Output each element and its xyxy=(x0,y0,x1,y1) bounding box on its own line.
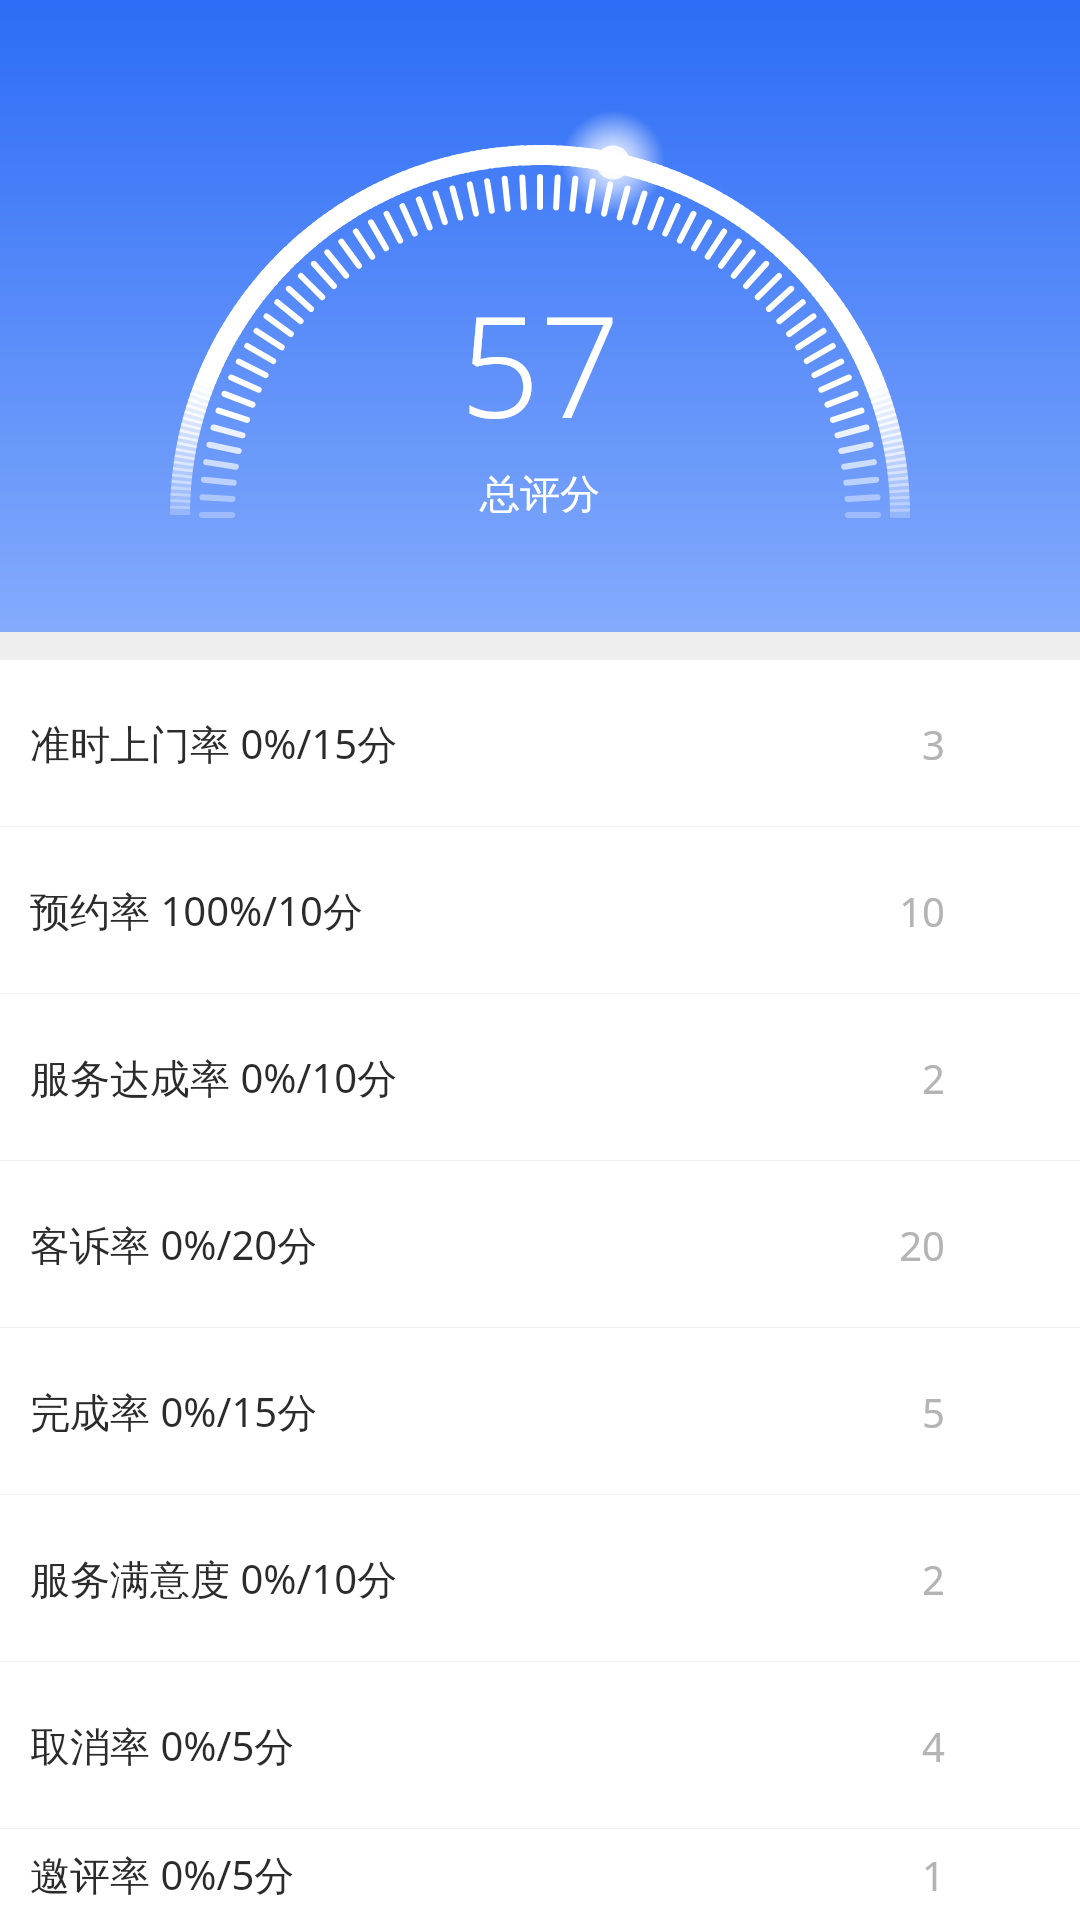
staticText: 5 xyxy=(922,1385,945,1439)
button[interactable]: 完成率 0%/15分 xyxy=(0,1328,1080,1494)
button[interactable]: 客诉率 0%/20分 xyxy=(0,1161,1080,1327)
staticText: 4 xyxy=(922,1719,945,1773)
staticText: 2 xyxy=(922,1051,945,1105)
staticText: 2 xyxy=(922,1552,945,1606)
staticText: 20 xyxy=(899,1218,945,1272)
button[interactable]: 邀评率 0%/5分 xyxy=(0,1829,1080,1920)
staticText: 总评分 xyxy=(480,469,600,519)
staticText: 服务满意度 0%/10分 xyxy=(30,1551,398,1606)
button[interactable]: 服务达成率 0%/10分 xyxy=(0,994,1080,1160)
staticText: 10 xyxy=(899,884,945,938)
staticText: 客诉率 0%/20分 xyxy=(30,1217,318,1272)
staticText: 准时上门率 0%/15分 xyxy=(30,716,398,771)
staticText: 预约率 100%/10分 xyxy=(30,883,363,938)
staticText: 邀评率 0%/5分 xyxy=(30,1847,295,1902)
staticText: 3 xyxy=(922,717,945,771)
staticText: 取消率 0%/5分 xyxy=(30,1718,295,1773)
staticText: 服务达成率 0%/10分 xyxy=(30,1050,398,1105)
button[interactable]: 准时上门率 0%/15分 xyxy=(0,660,1080,826)
staticText: 完成率 0%/15分 xyxy=(30,1384,318,1439)
button[interactable]: 取消率 0%/5分 xyxy=(0,1662,1080,1828)
staticText: 1 xyxy=(922,1848,945,1902)
staticText: 57 xyxy=(460,268,620,459)
button[interactable]: 预约率 100%/10分 xyxy=(0,827,1080,993)
button[interactable]: 服务满意度 0%/10分 xyxy=(0,1495,1080,1661)
